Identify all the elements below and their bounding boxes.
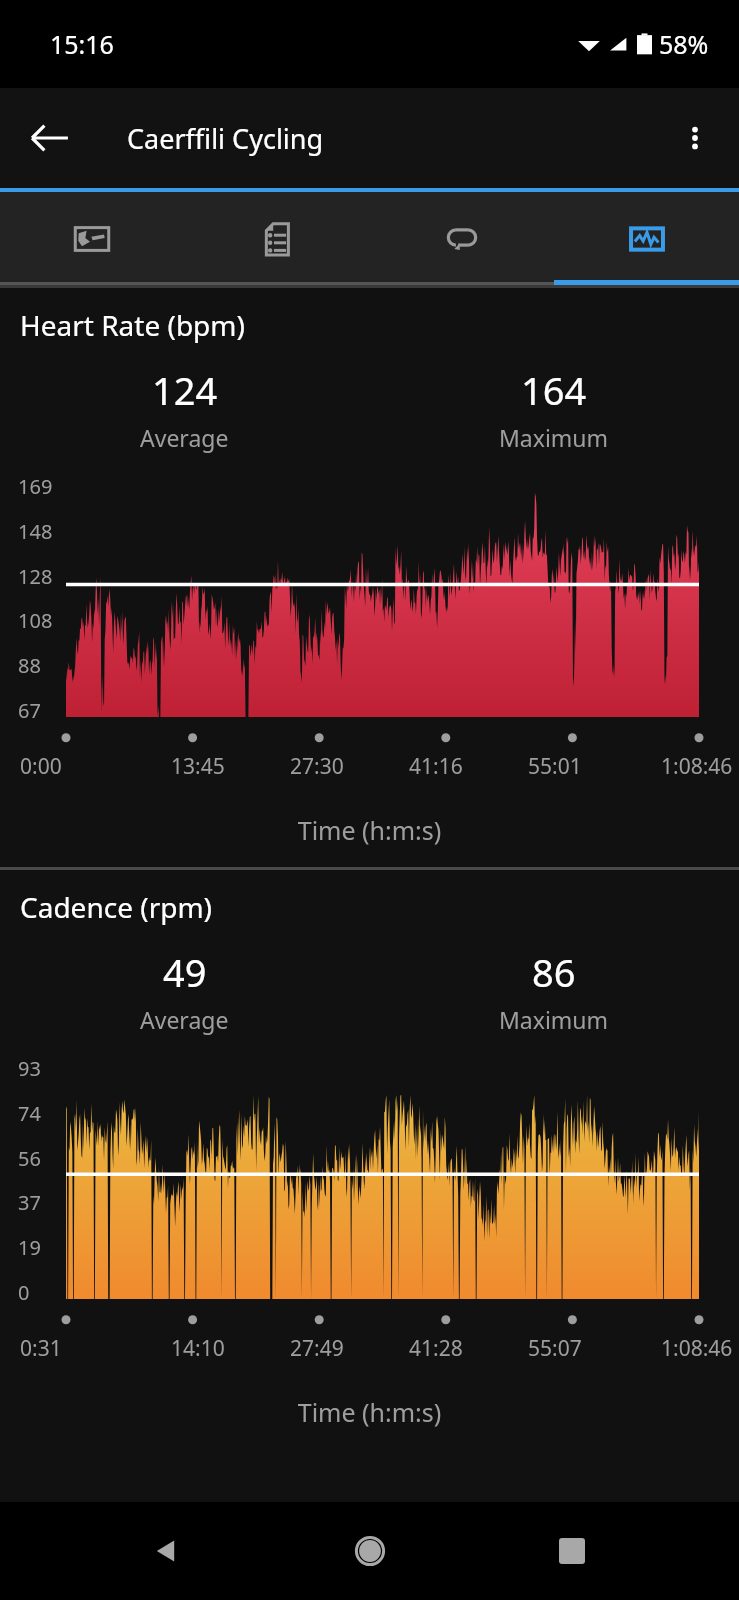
staticText: 27:30 (290, 752, 344, 781)
staticText: Cadence (rpm) (20, 888, 212, 926)
staticText: 93 (18, 1055, 41, 1082)
staticText: Time (h:m:s) (0, 813, 739, 847)
staticText: 67 (18, 697, 41, 724)
button[interactable]: Details (184, 192, 369, 285)
staticText: Heart Rate (bpm) (20, 306, 245, 344)
staticText: 1:08:46 (661, 1334, 733, 1363)
staticText: Maximum (499, 422, 609, 453)
button[interactable]: Home (335, 1516, 405, 1586)
staticText: Time (h:m:s) (0, 1395, 739, 1429)
staticText: 56 (18, 1145, 41, 1172)
staticText: 55:07 (528, 1334, 582, 1363)
staticText: 164 (521, 364, 587, 416)
button[interactable]: More options (669, 112, 721, 164)
staticText: 41:16 (409, 752, 463, 781)
staticText: 86 (532, 946, 576, 998)
staticText: 14:10 (171, 1334, 225, 1363)
staticText: Average (140, 1004, 229, 1035)
staticText: 88 (18, 652, 41, 679)
staticText: 0:00 (20, 752, 62, 781)
staticText: 0:31 (20, 1334, 62, 1363)
button[interactable]: Back (22, 110, 78, 166)
button[interactable]: Back (132, 1516, 202, 1586)
button[interactable]: Map (0, 192, 184, 285)
staticText: 148 (18, 518, 53, 545)
staticText: 0 (18, 1279, 30, 1306)
staticText: 19 (18, 1234, 41, 1261)
staticText: 27:49 (290, 1334, 344, 1363)
staticText: 41:28 (409, 1334, 463, 1363)
button[interactable]: Recent apps (537, 1516, 607, 1586)
staticText: 49 (163, 946, 207, 998)
staticText: 15:16 (50, 27, 114, 61)
staticText: 58% (659, 27, 709, 61)
staticText: 128 (18, 563, 53, 590)
staticText: Maximum (499, 1004, 609, 1035)
staticText: 169 (18, 473, 53, 500)
staticText: 37 (18, 1189, 41, 1216)
staticText: 74 (18, 1100, 41, 1127)
staticText: 124 (152, 364, 218, 416)
staticText: 55:01 (528, 752, 582, 781)
staticText: Average (140, 422, 229, 453)
button[interactable]: Laps (369, 192, 554, 285)
staticText: 13:45 (171, 752, 225, 781)
staticText: 1:08:46 (661, 752, 733, 781)
staticText: 108 (18, 607, 53, 634)
staticText: Caerffili Cycling (127, 120, 324, 157)
button[interactable]: Charts (554, 192, 739, 285)
